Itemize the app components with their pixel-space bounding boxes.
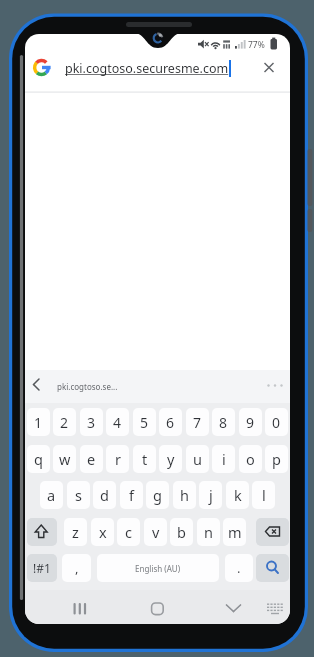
- staticText: ,: [75, 559, 79, 577]
- staticText: r: [115, 449, 121, 469]
- staticText: i: [222, 449, 226, 469]
- button[interactable]: English (AU): [97, 554, 219, 582]
- staticText: 8: [219, 413, 228, 432]
- button[interactable]: k: [226, 481, 249, 509]
- staticText: 4: [113, 413, 122, 432]
- staticText: x: [99, 522, 107, 542]
- staticText: q: [34, 449, 43, 469]
- staticText: !#1: [33, 560, 51, 576]
- staticText: f: [129, 485, 134, 505]
- staticText: 0: [272, 413, 281, 432]
- button[interactable]: f: [120, 481, 143, 509]
- button[interactable]: 4: [106, 408, 129, 436]
- staticText: .: [237, 559, 241, 577]
- button[interactable]: 7: [186, 408, 209, 436]
- staticText: pki.cogtoso.se...: [57, 381, 118, 392]
- button[interactable]: b: [170, 518, 193, 546]
- button[interactable]: x: [91, 518, 114, 546]
- button[interactable]: .: [225, 554, 253, 582]
- staticText: 6: [166, 413, 175, 432]
- button[interactable]: !#1: [27, 554, 57, 582]
- staticText: n: [204, 522, 213, 542]
- button[interactable]: 5: [133, 408, 156, 436]
- staticText: j: [209, 485, 213, 505]
- button[interactable]: 6: [159, 408, 182, 436]
- button[interactable]: r: [106, 445, 129, 473]
- button[interactable]: o: [239, 445, 262, 473]
- staticText: o: [246, 449, 255, 469]
- staticText: k: [234, 485, 242, 505]
- staticText: 7: [193, 413, 202, 432]
- button[interactable]: i: [212, 445, 235, 473]
- staticText: u: [193, 449, 202, 469]
- button[interactable]: 8: [212, 408, 235, 436]
- button[interactable]: g: [146, 481, 169, 509]
- staticText: pki.cogtoso.securesme.com: [65, 60, 229, 77]
- staticText: v: [152, 522, 160, 542]
- button[interactable]: u: [186, 445, 209, 473]
- button[interactable]: t: [133, 445, 156, 473]
- button[interactable]: l: [252, 481, 275, 509]
- staticText: m: [228, 522, 242, 542]
- button[interactable]: 1: [27, 408, 50, 436]
- button[interactable]: q: [27, 445, 50, 473]
- staticText: l: [262, 485, 266, 505]
- button[interactable]: d: [93, 481, 116, 509]
- staticText: English (AU): [135, 563, 181, 574]
- button[interactable]: e: [80, 445, 103, 473]
- staticText: 77%: [248, 39, 265, 51]
- staticText: a: [47, 485, 56, 505]
- button[interactable]: j: [199, 481, 222, 509]
- button[interactable]: s: [67, 481, 90, 509]
- staticText: y: [167, 449, 175, 469]
- button[interactable]: ,: [62, 554, 91, 582]
- button[interactable]: 9: [239, 408, 262, 436]
- button[interactable]: p: [265, 445, 288, 473]
- button[interactable]: v: [144, 518, 167, 546]
- button[interactable]: m: [223, 518, 246, 546]
- staticText: h: [180, 485, 189, 505]
- staticText: w: [59, 449, 71, 469]
- staticText: 2: [60, 413, 69, 432]
- button[interactable]: 2: [53, 408, 76, 436]
- staticText: s: [75, 485, 82, 505]
- button[interactable]: 3: [80, 408, 103, 436]
- button[interactable]: 0: [265, 408, 288, 436]
- staticText: 1: [34, 413, 43, 432]
- button[interactable]: c: [117, 518, 140, 546]
- staticText: z: [72, 522, 79, 542]
- button[interactable]: pki.cogtoso.se...: [57, 370, 118, 403]
- staticText: 5: [140, 413, 149, 432]
- button[interactable]: z: [64, 518, 87, 546]
- button[interactable]: pki.cogtoso.securesme.com: [65, 58, 231, 78]
- staticText: t: [142, 449, 148, 469]
- staticText: g: [153, 485, 162, 505]
- staticText: c: [125, 522, 132, 542]
- staticText: e: [87, 449, 96, 469]
- button[interactable]: w: [53, 445, 76, 473]
- button[interactable]: n: [197, 518, 220, 546]
- staticText: 3: [87, 413, 96, 432]
- button[interactable]: a: [40, 481, 63, 509]
- button[interactable]: [27, 518, 57, 546]
- button[interactable]: [256, 554, 289, 582]
- button[interactable]: [256, 518, 289, 546]
- staticText: b: [177, 522, 186, 542]
- staticText: d: [100, 485, 109, 505]
- button[interactable]: h: [173, 481, 196, 509]
- staticText: p: [272, 449, 281, 469]
- staticText: 9: [246, 413, 255, 432]
- button[interactable]: y: [159, 445, 182, 473]
